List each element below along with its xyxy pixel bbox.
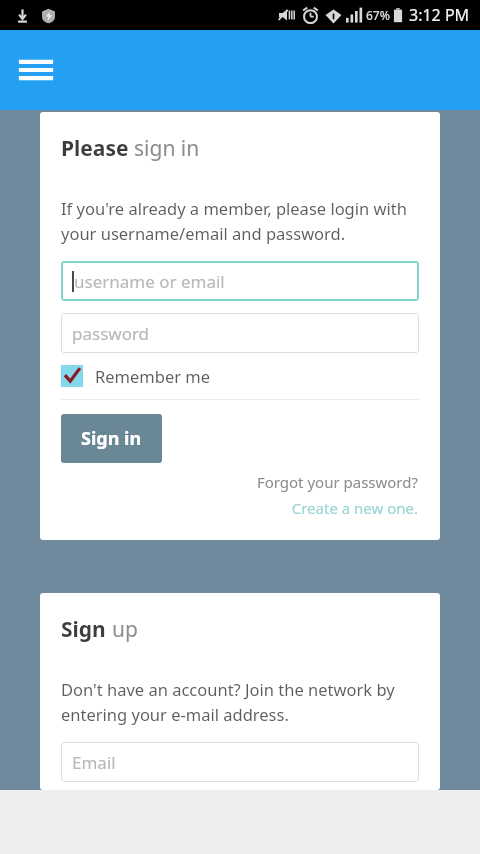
button[interactable]: Email [61,742,419,782]
staticText: Remember me [95,365,211,387]
staticText: Don't have an account? Join the network … [61,678,419,725]
button[interactable]: Create a new one. [291,498,418,518]
button[interactable]: Sign in [61,414,162,463]
staticText: sign in [134,134,200,163]
staticText: 3:12 PM [409,4,470,26]
button[interactable]: Forgot your password? [256,472,418,492]
staticText: up [112,615,138,644]
staticText: username or email [74,270,225,293]
button[interactable]: Remember me [61,365,211,387]
button[interactable]: username or email [61,261,419,301]
staticText: 67% [366,7,390,23]
staticText: Sign in [81,426,142,451]
staticText: Please [61,134,134,163]
staticText: Sign [61,615,112,644]
button[interactable]: password [61,313,419,353]
button[interactable]: Open navigation menu [16,50,56,90]
staticText: Email [72,751,116,774]
staticText: password [72,322,150,345]
staticText: If you're already a member, please login… [61,197,419,244]
